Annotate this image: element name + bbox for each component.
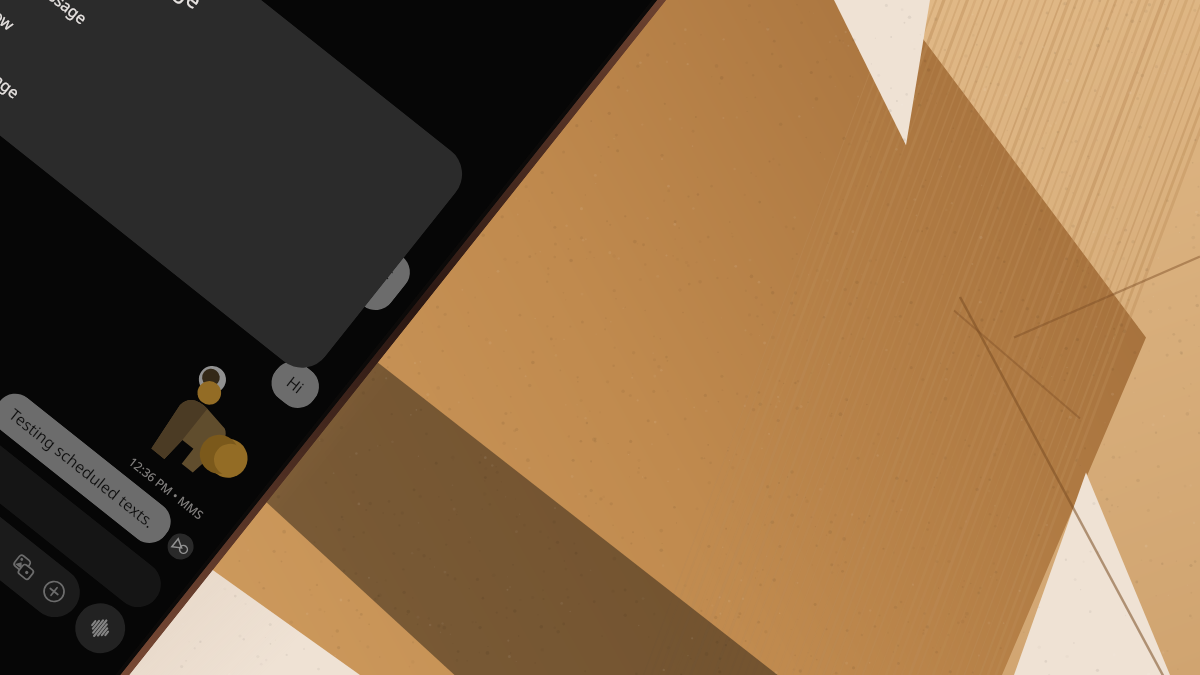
- staticText: He's not there. Today is a day.: [0, 0, 67, 130]
- button[interactable]: Attach image: [7, 551, 41, 585]
- staticText: Testing scheduled texts.: [5, 403, 160, 533]
- button[interactable]: Voice message: [65, 593, 135, 663]
- staticText: Uh oh. Do you want me to stop by?: [0, 0, 163, 24]
- staticText: Send now: [0, 0, 19, 35]
- staticText: Hi: [282, 371, 308, 398]
- button[interactable]: Send now: [0, 0, 380, 327]
- staticText: Delete message: [0, 11, 24, 103]
- staticText: 12:36 PM • MMS: [126, 453, 208, 523]
- staticText: Scheduled message: [29, 0, 209, 15]
- button[interactable]: Hi: [263, 353, 327, 416]
- staticText: I can visit him at College: [276, 190, 399, 300]
- button[interactable]: Update message: [0, 0, 411, 287]
- button[interactable]: Testing scheduled texts.: [0, 386, 179, 551]
- button[interactable]: Delete message: [0, 0, 349, 366]
- button[interactable]: Add attachment: [37, 575, 71, 608]
- button[interactable]: Uh oh. Do you want me to stop by?: [0, 0, 181, 42]
- button[interactable]: He's not there. Today is a day.: [0, 0, 86, 148]
- button[interactable]: Scheduled send: [162, 528, 199, 565]
- staticText: Update message: [0, 0, 92, 29]
- button[interactable]: I can visit him at College: [257, 172, 418, 318]
- button[interactable]: Emoji: [0, 259, 90, 627]
- button[interactable]: Scheduled messages (1): [0, 216, 170, 616]
